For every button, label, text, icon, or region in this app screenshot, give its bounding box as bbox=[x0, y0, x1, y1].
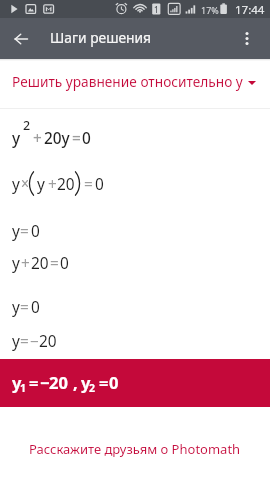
staticText: − bbox=[30, 331, 39, 352]
staticText: y bbox=[12, 221, 20, 242]
staticText: y bbox=[12, 371, 22, 393]
staticText: 0 bbox=[109, 371, 119, 393]
staticText: 20 bbox=[39, 331, 57, 352]
staticText: 1 bbox=[154, 4, 159, 15]
staticText: y bbox=[12, 331, 20, 352]
staticText: + bbox=[48, 174, 57, 195]
button[interactable]: Расскажите друзьям о Photomath bbox=[0, 407, 270, 480]
staticText: = bbox=[29, 371, 39, 393]
staticText: 17% bbox=[201, 4, 219, 16]
staticText: Расскажите друзьям о Photomath bbox=[29, 440, 241, 458]
staticText: 20 bbox=[31, 253, 49, 274]
staticText: = bbox=[84, 174, 93, 195]
staticText: 20y bbox=[44, 128, 70, 149]
staticText: + bbox=[33, 128, 42, 149]
staticText: = bbox=[99, 371, 109, 393]
button[interactable]: More options bbox=[232, 24, 261, 53]
staticText: , bbox=[73, 371, 78, 393]
staticText: y bbox=[12, 253, 20, 274]
staticText: = bbox=[20, 297, 29, 318]
staticText: Шаги решения bbox=[50, 28, 152, 47]
staticText: = bbox=[20, 331, 29, 352]
staticText: 0 bbox=[31, 221, 40, 242]
staticText: 1 bbox=[20, 381, 27, 395]
staticText: y bbox=[12, 128, 21, 149]
staticText: 0 bbox=[82, 128, 91, 149]
staticText: 17:44 bbox=[235, 2, 265, 18]
staticText: = bbox=[72, 128, 81, 149]
staticText: y bbox=[12, 297, 20, 318]
button[interactable]: y bbox=[0, 359, 270, 407]
staticText: 2 bbox=[89, 381, 96, 395]
button[interactable]: Решить уравнение относительно y bbox=[0, 59, 270, 108]
staticText: = bbox=[50, 253, 59, 274]
staticText: − bbox=[40, 371, 50, 393]
staticText: 20 bbox=[57, 174, 75, 195]
staticText: + bbox=[21, 253, 30, 274]
staticText: = bbox=[20, 221, 29, 242]
staticText: 0 bbox=[31, 297, 40, 318]
staticText: 0 bbox=[60, 253, 69, 274]
staticText: y bbox=[12, 174, 20, 195]
staticText: 20 bbox=[49, 371, 68, 393]
staticText: Решить уравнение относительно y bbox=[12, 72, 243, 91]
button[interactable]: Back bbox=[6, 24, 35, 53]
staticText: 0 bbox=[95, 174, 104, 195]
staticText: y bbox=[81, 371, 91, 393]
staticText: y bbox=[37, 174, 45, 195]
staticText: 2 bbox=[23, 117, 31, 134]
